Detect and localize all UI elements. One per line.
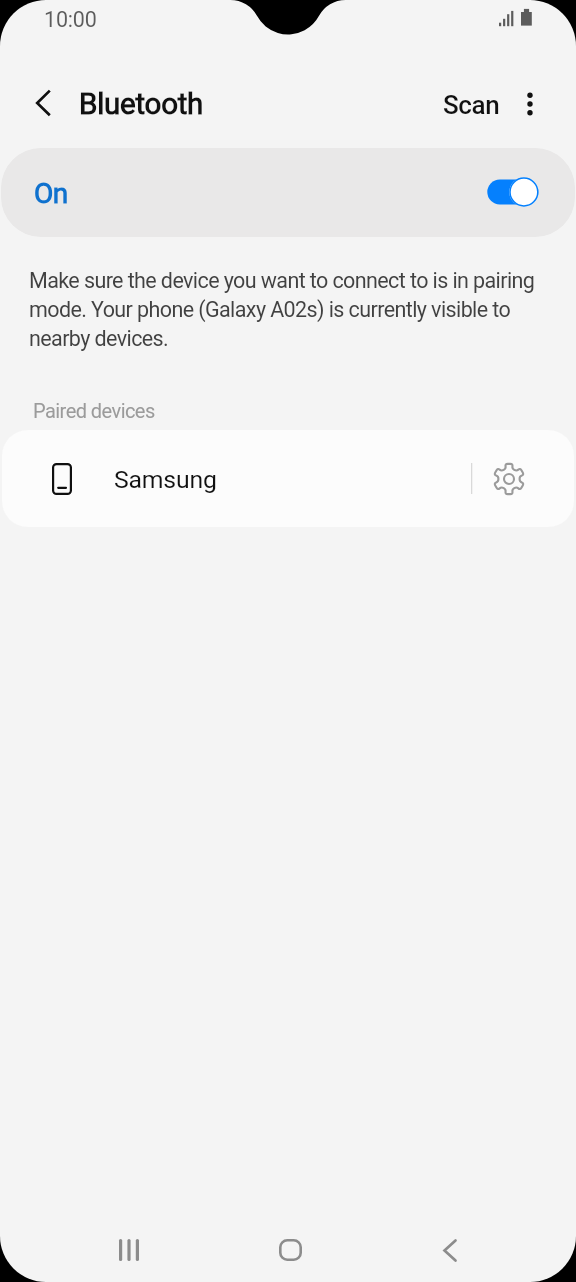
staticText: Make sure the device you want to connect… — [29, 265, 549, 352]
button[interactable]: Samsung — [2, 430, 574, 527]
staticText: Samsung — [114, 464, 217, 494]
staticText: On — [34, 177, 68, 210]
button[interactable]: Device settings — [480, 450, 537, 507]
button[interactable]: Back — [418, 1219, 482, 1281]
button[interactable]: More options — [502, 75, 558, 131]
button[interactable]: Scan — [432, 75, 511, 134]
button[interactable]: Navigate up — [15, 74, 71, 130]
staticText: 10:00 — [44, 10, 97, 32]
staticText: Paired devices — [33, 399, 155, 423]
button[interactable]: Home — [258, 1219, 322, 1281]
button[interactable]: Recent apps — [97, 1219, 161, 1281]
button[interactable]: On — [1, 148, 575, 237]
staticText: Scan — [443, 89, 500, 120]
staticText: Bluetooth — [79, 87, 204, 121]
